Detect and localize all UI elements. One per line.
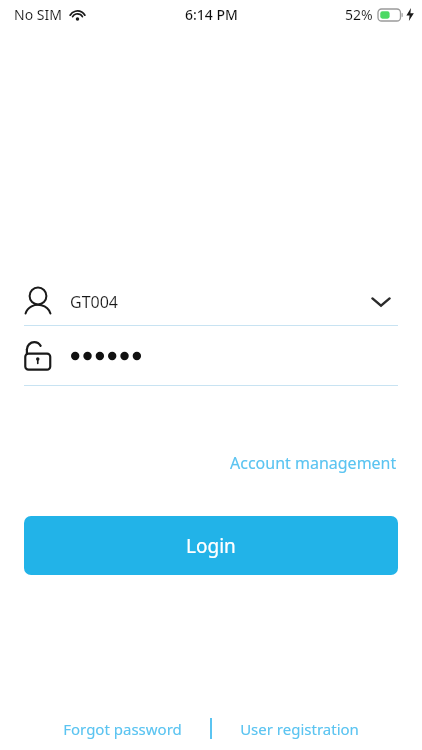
button[interactable]: Account management: [228, 448, 399, 478]
button[interactable]: Forgot password: [35, 719, 210, 739]
button[interactable]: GT004: [24, 278, 398, 325]
staticText: Login: [186, 533, 236, 559]
staticText: 52%: [345, 5, 373, 24]
staticText: User registration: [240, 719, 359, 739]
staticText: GT004: [70, 291, 364, 313]
button[interactable]: Show account list: [364, 285, 398, 319]
staticText: No SIM: [14, 5, 62, 24]
button[interactable]: [24, 326, 398, 385]
staticText: 6:14 PM: [185, 5, 238, 24]
staticText: Account management: [230, 452, 397, 474]
staticText: Forgot password: [63, 719, 182, 739]
button[interactable]: Login: [24, 516, 398, 575]
button[interactable]: User registration: [212, 719, 387, 739]
